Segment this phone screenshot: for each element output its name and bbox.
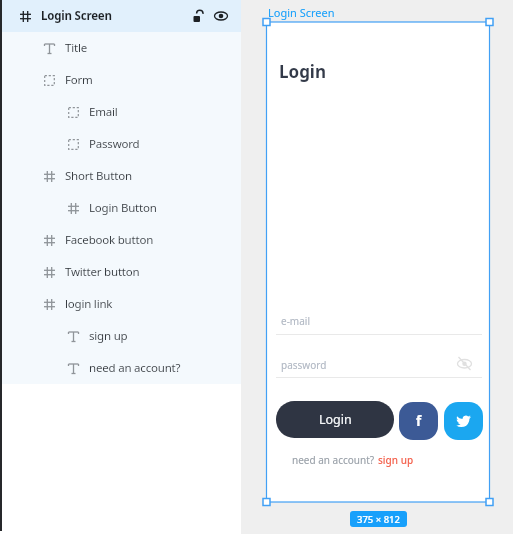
staticText: Login	[319, 411, 352, 428]
staticText: Twitter button	[65, 264, 140, 280]
button[interactable]: login link	[0, 288, 241, 320]
button[interactable]: Title	[0, 32, 241, 64]
staticText: Facebook button	[65, 232, 154, 248]
button[interactable]: Login Button	[0, 192, 241, 224]
staticText: f	[416, 412, 422, 430]
button[interactable]: Form	[0, 64, 241, 96]
staticText: Title	[65, 40, 87, 56]
staticText: Form	[65, 72, 93, 88]
staticText: sign up	[89, 328, 128, 344]
button[interactable]: Login	[276, 401, 394, 438]
staticText: Short Button	[65, 168, 132, 184]
button[interactable]: Twitter button	[0, 256, 241, 288]
button[interactable]: Facebook button	[0, 224, 241, 256]
button[interactable]: sign up	[0, 320, 241, 352]
staticText: Email	[89, 104, 118, 120]
button[interactable]: Login Screen	[268, 5, 335, 20]
staticText: need an account?	[89, 360, 181, 376]
staticText: Login	[279, 60, 327, 83]
staticText: Password	[89, 136, 140, 152]
staticText: Login Screen	[41, 8, 112, 24]
button[interactable]: Login Screen	[0, 0, 241, 32]
button[interactable]: need an account?	[0, 352, 241, 384]
staticText: 375 × 812	[357, 513, 400, 526]
button[interactable]: Short Button	[0, 160, 241, 192]
button[interactable]: sign up	[378, 453, 414, 467]
button[interactable]	[444, 402, 483, 440]
button[interactable]: f	[399, 402, 438, 440]
staticText: password	[281, 358, 327, 372]
button[interactable]: Email	[0, 96, 241, 128]
staticText: need an account?	[292, 453, 375, 467]
staticText: e-mail	[281, 314, 310, 328]
staticText: Login Button	[89, 200, 157, 216]
staticText: login link	[65, 296, 113, 312]
button[interactable]: Password	[0, 128, 241, 160]
